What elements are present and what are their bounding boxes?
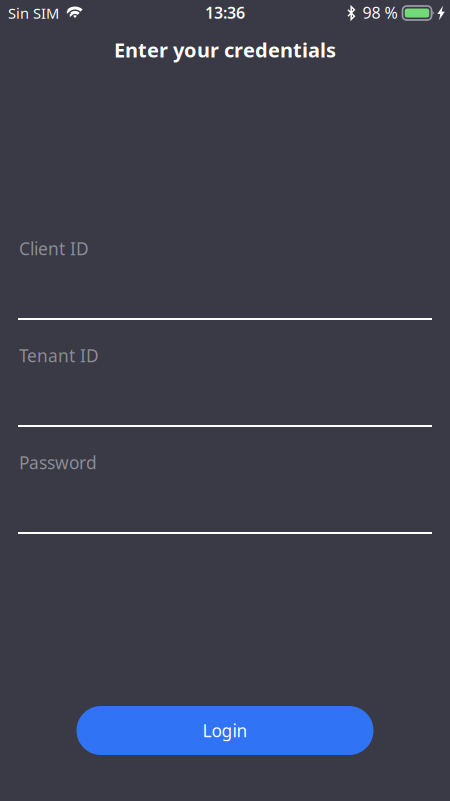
staticText: Sin SIM — [8, 3, 59, 23]
staticText: Password — [19, 451, 97, 474]
button[interactable]: Password — [18, 450, 432, 534]
button[interactable]: Tenant ID — [18, 343, 432, 427]
staticText: Tenant ID — [19, 344, 99, 367]
button[interactable]: Login — [76, 706, 373, 755]
staticText: Client ID — [19, 237, 89, 260]
staticText: 13:36 — [205, 2, 245, 23]
staticText: Login — [202, 719, 247, 742]
button[interactable]: Client ID — [18, 236, 432, 320]
staticText: 98 % — [362, 2, 397, 23]
staticText: Enter your credentials — [114, 36, 336, 63]
